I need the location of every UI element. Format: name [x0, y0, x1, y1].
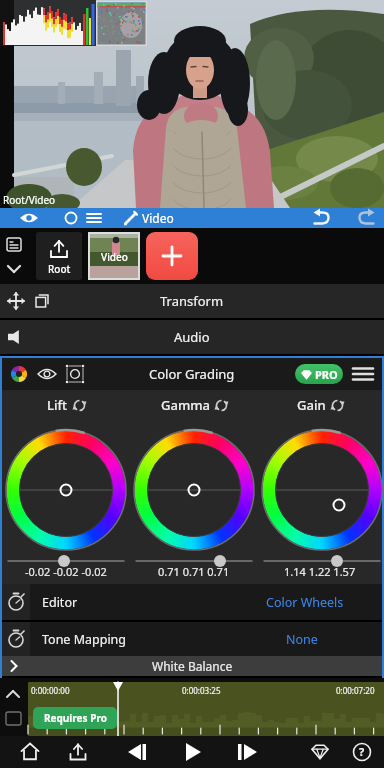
button[interactable]: Video: [88, 232, 140, 280]
button[interactable]: PRO: [295, 364, 343, 384]
staticText: 1.14 1.22 1.57: [284, 564, 356, 579]
staticText: PRO: [315, 367, 338, 382]
staticText: White Balance: [152, 658, 233, 674]
staticText: 0.71 0.71 0.71: [158, 564, 230, 579]
button[interactable]: [146, 232, 198, 280]
button[interactable]: Editor: [30, 584, 382, 620]
button[interactable]: [109, 736, 164, 768]
staticText: Video: [142, 210, 174, 226]
staticText: 0:00:00:00: [31, 685, 70, 696]
staticText: None: [286, 631, 318, 648]
staticText: Lift: [47, 396, 68, 414]
button[interactable]: Tone Mapping: [30, 622, 382, 656]
staticText: 0:00:03:25: [182, 685, 221, 696]
staticText: Audio: [174, 328, 210, 346]
staticText: Gamma: [161, 396, 210, 414]
button[interactable]: [274, 736, 329, 768]
staticText: Gain: [297, 396, 326, 414]
staticText: Root/Video: [3, 193, 56, 207]
staticText: Color Grading: [149, 365, 235, 383]
staticText: Color Wheels: [266, 594, 344, 611]
button[interactable]: [0, 736, 54, 768]
staticText: 0:00:07:20: [336, 685, 375, 696]
button[interactable]: [352, 363, 374, 385]
staticText: Transform: [160, 292, 224, 310]
button[interactable]: Transform: [0, 284, 384, 318]
staticText: Tone Mapping: [42, 631, 127, 648]
staticText: Video: [101, 250, 128, 264]
button[interactable]: [219, 736, 274, 768]
button[interactable]: [164, 736, 219, 768]
staticText: -0.02 -0.02 -0.02: [25, 564, 107, 579]
button[interactable]: Audio: [0, 320, 384, 354]
button[interactable]: Root: [36, 232, 82, 280]
staticText: Root: [48, 262, 71, 276]
staticText: Editor: [42, 594, 78, 611]
staticText: ?: [359, 744, 365, 759]
button[interactable]: [54, 736, 109, 768]
button[interactable]: [329, 736, 384, 768]
button[interactable]: White Balance: [2, 656, 382, 676]
button[interactable]: Requires Pro: [33, 707, 117, 729]
staticText: Requires Pro: [44, 711, 107, 725]
